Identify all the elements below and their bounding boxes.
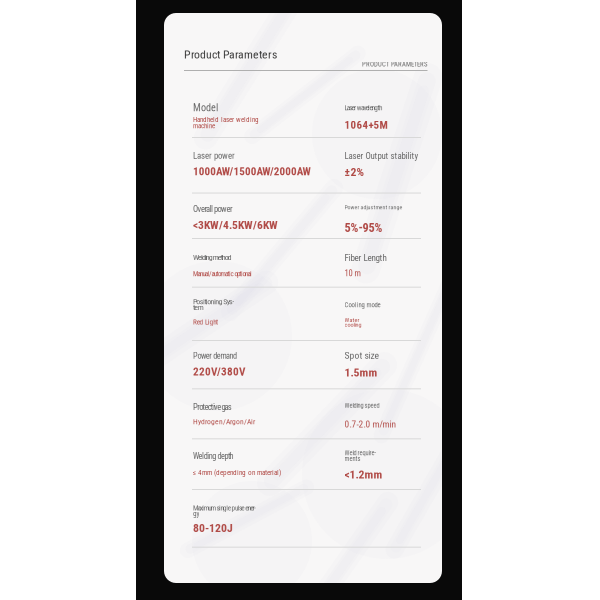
staticText: 5%-95% [344, 221, 382, 235]
staticText: <1.2mm [344, 467, 382, 481]
button[interactable]: Welding depth, 4mm or less depending on … [192, 439, 344, 488]
staticText: Welding method [193, 253, 232, 262]
button[interactable]: Overall power, less than 3KW/4.5KW/6KW [192, 193, 344, 237]
button[interactable]: Spot size, 1.5mm [344, 341, 421, 387]
staticText: 0.7-2.0 m/min [344, 419, 396, 430]
staticText: 80-120J [193, 521, 233, 535]
staticText: Manual/automatic optional [193, 270, 252, 278]
staticText: ≤ 4mm (depending on material) [193, 468, 281, 477]
staticText: Power demand [193, 351, 237, 361]
staticText: Welding speed [344, 402, 379, 409]
staticText: machine [193, 122, 215, 130]
button[interactable]: Power adjustment range, 5% to 95% [344, 193, 421, 237]
staticText: ments [344, 455, 360, 462]
button[interactable]: Laser Output stability, ±2% [344, 138, 421, 191]
staticText: Cooling mode [344, 301, 380, 309]
staticText: tem [193, 302, 204, 312]
staticText: PRODUCT PARAMETERS [362, 60, 427, 68]
staticText: Laser Output stability [344, 151, 418, 161]
button[interactable]: Protective gas, Hydrogen/Argon/Air [192, 389, 344, 437]
button[interactable]: Positioning System, Red Light [192, 288, 344, 339]
staticText: gy [193, 509, 199, 518]
button[interactable]: Maximum single pulse energy, 80-120J [192, 490, 344, 546]
staticText: 10 m [344, 268, 360, 278]
button[interactable]: Power demand, 220V/380V [192, 341, 344, 387]
staticText: Positioning Sys- [193, 297, 234, 306]
staticText: Protective gas [193, 402, 232, 412]
staticText: Red Light [193, 318, 218, 326]
button[interactable]: Fiber Length, 10 m [344, 239, 421, 286]
staticText: Model [193, 102, 218, 114]
staticText: Welding depth [193, 451, 234, 461]
button[interactable]: Cooling mode, Water cooling [344, 288, 421, 339]
staticText: Overall power [193, 204, 233, 214]
staticText: 220V/380V [193, 365, 245, 378]
button[interactable]: Weld requirements, less than 1.2mm [344, 439, 421, 488]
staticText: Maximum single pulse ener- [193, 504, 256, 512]
staticText: Weld require- [344, 449, 376, 457]
staticText: Power adjustment range [344, 204, 402, 211]
staticText: <3KW/4.5KW/6KW [193, 218, 278, 232]
staticText: Product Parameters [184, 48, 277, 61]
staticText: Hydrogen/Argon/Air [193, 417, 255, 426]
button[interactable]: Laser wavelength, 1064+5M [344, 72, 421, 136]
button[interactable]: Laser power, 1000AW/1500AW/2000AW [192, 138, 344, 191]
staticText: Spot size [344, 350, 379, 361]
button[interactable]: Welding speed, 0.7-2.0 m/min [344, 389, 421, 437]
button[interactable]: Model, Handheld laser welding machine [192, 72, 344, 136]
staticText: Handheld laser welding [193, 115, 258, 124]
button[interactable]: Welding method, Manual/automatic optiona… [192, 239, 344, 286]
staticText: 1000AW/1500AW/2000AW [193, 165, 311, 178]
staticText: Water [344, 316, 359, 323]
staticText: 1.5mm [344, 366, 377, 379]
staticText: cooling [344, 321, 361, 328]
staticText: ±2% [344, 165, 363, 179]
staticText: Fiber Length [344, 253, 386, 263]
staticText: Laser power [193, 151, 235, 161]
staticText: Laser wavelength [344, 104, 382, 112]
staticText: 1064+5M [344, 119, 387, 131]
